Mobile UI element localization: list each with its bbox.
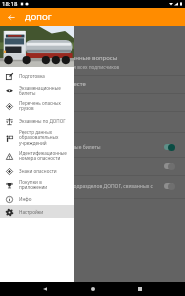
button[interactable]: Знаки опасности	[0, 164, 74, 178]
button[interactable]: Toggle	[164, 182, 175, 190]
button[interactable]: Toggle	[164, 162, 175, 170]
button[interactable]: Экзамены по ДОПОГ	[0, 113, 74, 128]
staticText: Идентификационные номера опасности	[19, 150, 67, 162]
button[interactable]: Покупки в приложении	[0, 178, 74, 192]
button[interactable]: Реестр данных образовательных учреждений	[0, 128, 74, 147]
staticText: Вопросов в тесте	[36, 80, 86, 88]
button[interactable]: Перечень опасных грузов	[0, 98, 74, 113]
staticText: Отображение подразделов ДОПОГ, связанных…	[36, 183, 161, 190]
button[interactable]: Back	[38, 282, 52, 296]
button[interactable]: Показ ответов	[0, 157, 185, 175]
button[interactable]: Home	[86, 282, 100, 296]
button[interactable]: Recents	[133, 282, 147, 296]
staticText: Инфо	[19, 196, 32, 202]
staticText: Экзаменационные вопросы	[36, 54, 118, 62]
button[interactable]: Настройки	[0, 205, 74, 218]
staticText: 18:18	[2, 0, 18, 8]
staticText: Экзаменационные билеты	[36, 144, 161, 151]
button[interactable]: Подготовка	[0, 68, 74, 83]
button[interactable]: Идентификационные номера опасности	[0, 147, 74, 164]
staticText: Реестр данных образовательных учреждений	[19, 129, 59, 147]
staticText: Знаки опасности	[19, 168, 57, 174]
staticText: Настройки	[19, 209, 44, 215]
staticText: Покупки в приложении	[19, 179, 48, 191]
staticText: Экзамены по ДОПОГ	[19, 118, 66, 124]
button[interactable]: Инфо	[0, 192, 74, 205]
staticText: Экзаменационные билеты	[19, 85, 61, 97]
staticText: Перечень опасных грузов	[19, 100, 61, 112]
button[interactable]: Экзаменационные билеты	[0, 138, 185, 156]
staticText: Показ ответов	[36, 163, 161, 170]
button[interactable]: Toggle	[164, 143, 175, 151]
button[interactable]: Экзаменационные билеты	[0, 83, 74, 98]
button[interactable]: Отображение подразделов ДОПОГ, связанных…	[0, 177, 185, 195]
staticText: ДОПОГ	[25, 12, 52, 22]
button[interactable]: Вопросов в тесте	[0, 77, 185, 93]
button[interactable]: Экзаменационные вопросы	[0, 51, 185, 75]
staticText: Полный курс для всех подписчиков	[36, 64, 120, 71]
staticText: Подготовка	[19, 73, 45, 79]
button[interactable]: Back	[4, 10, 18, 24]
